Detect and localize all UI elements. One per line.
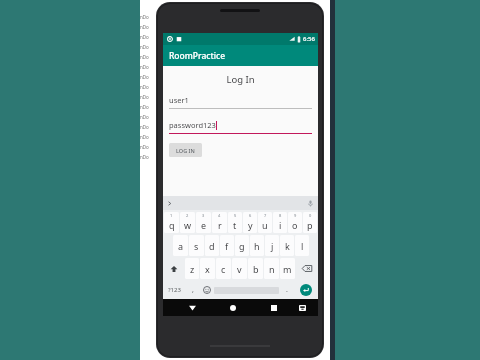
- staticText: v: [237, 263, 242, 275]
- staticText: x: [205, 263, 210, 275]
- button[interactable]: k: [280, 235, 294, 256]
- button[interactable]: Voice input: [305, 198, 315, 208]
- button[interactable]: x: [200, 258, 215, 279]
- button[interactable]: m: [280, 258, 295, 279]
- button[interactable]: s: [189, 235, 204, 256]
- button[interactable]: 9: [288, 212, 302, 233]
- button[interactable]: Home: [227, 302, 239, 314]
- staticText: a: [178, 240, 184, 252]
- staticText: nDo: [140, 24, 149, 30]
- button[interactable]: 7: [258, 212, 272, 233]
- staticText: nDo: [140, 54, 149, 60]
- button[interactable]: 1: [164, 212, 179, 233]
- button[interactable]: 5: [228, 212, 242, 233]
- button[interactable]: v: [232, 258, 247, 279]
- button[interactable]: c: [216, 258, 231, 279]
- staticText: 0: [309, 213, 312, 218]
- button[interactable]: 2: [180, 212, 195, 233]
- button[interactable]: j: [265, 235, 279, 256]
- button[interactable]: Emoji: [200, 282, 213, 298]
- button[interactable]: z: [185, 258, 199, 279]
- staticText: ,: [192, 285, 194, 295]
- staticText: 9: [294, 213, 297, 218]
- button[interactable]: l: [295, 235, 309, 256]
- staticText: q: [169, 219, 175, 231]
- staticText: e: [201, 219, 207, 231]
- staticText: nDo: [140, 14, 149, 20]
- button[interactable]: Shift: [164, 258, 184, 279]
- staticText: n: [269, 263, 275, 275]
- staticText: 8: [279, 213, 282, 218]
- button[interactable]: d: [205, 235, 219, 256]
- staticText: nDo: [140, 134, 149, 140]
- staticText: nDo: [140, 64, 149, 70]
- button[interactable]: LOG IN: [169, 143, 202, 157]
- staticText: w: [184, 219, 192, 231]
- staticText: g: [239, 240, 245, 252]
- button[interactable]: password123: [169, 120, 312, 134]
- staticText: password123: [169, 120, 216, 130]
- staticText: nDo: [140, 94, 149, 100]
- button[interactable]: Back: [186, 302, 198, 314]
- staticText: 6: [249, 213, 252, 218]
- staticText: 6:56: [303, 35, 315, 43]
- staticText: 3: [202, 213, 205, 218]
- staticText: l: [301, 240, 304, 252]
- button[interactable]: ?123: [164, 282, 185, 298]
- staticText: 4: [218, 213, 221, 218]
- staticText: r: [218, 219, 222, 231]
- staticText: nDo: [140, 144, 149, 150]
- staticText: f: [225, 240, 229, 252]
- button[interactable]: user1: [169, 95, 312, 109]
- staticText: .: [286, 285, 288, 295]
- staticText: nDo: [140, 154, 149, 160]
- staticText: y: [248, 219, 253, 231]
- button[interactable]: 0: [303, 212, 317, 233]
- staticText: nDo: [140, 44, 149, 50]
- staticText: RoomPractice: [169, 50, 226, 62]
- staticText: LOG IN: [176, 147, 195, 154]
- staticText: c: [221, 263, 226, 275]
- staticText: u: [262, 219, 268, 231]
- button[interactable]: 4: [212, 212, 227, 233]
- button[interactable]: a: [173, 235, 188, 256]
- staticText: m: [283, 263, 292, 275]
- staticText: s: [194, 240, 199, 252]
- button[interactable]: Backspace: [296, 258, 317, 279]
- button[interactable]: h: [250, 235, 264, 256]
- staticText: p: [307, 219, 313, 231]
- staticText: nDo: [140, 74, 149, 80]
- staticText: k: [285, 240, 290, 252]
- staticText: user1: [169, 95, 189, 105]
- button[interactable]: ,: [186, 282, 199, 298]
- staticText: nDo: [140, 124, 149, 130]
- button[interactable]: b: [248, 258, 263, 279]
- staticText: 5: [234, 213, 237, 218]
- staticText: j: [271, 240, 274, 252]
- staticText: h: [254, 240, 260, 252]
- button[interactable]: 8: [273, 212, 287, 233]
- button[interactable]: More suggestions: [165, 199, 173, 207]
- staticText: 7: [264, 213, 267, 218]
- staticText: nDo: [140, 84, 149, 90]
- staticText: Log In: [163, 73, 318, 86]
- staticText: o: [292, 219, 298, 231]
- button[interactable]: 3: [196, 212, 211, 233]
- staticText: t: [233, 219, 237, 231]
- staticText: nDo: [140, 114, 149, 120]
- staticText: 2: [186, 213, 189, 218]
- button[interactable]: g: [235, 235, 249, 256]
- button[interactable]: f: [220, 235, 234, 256]
- staticText: i: [279, 219, 282, 231]
- staticText: b: [253, 263, 259, 275]
- button[interactable]: .: [280, 282, 293, 298]
- button[interactable]: Hide keyboard: [296, 302, 308, 314]
- staticText: 1: [170, 213, 173, 218]
- button[interactable]: Enter: [294, 282, 317, 298]
- button[interactable]: n: [264, 258, 279, 279]
- button[interactable]: 6: [243, 212, 257, 233]
- staticText: d: [209, 240, 215, 252]
- button[interactable]: Recent apps: [268, 302, 280, 314]
- staticText: z: [190, 263, 195, 275]
